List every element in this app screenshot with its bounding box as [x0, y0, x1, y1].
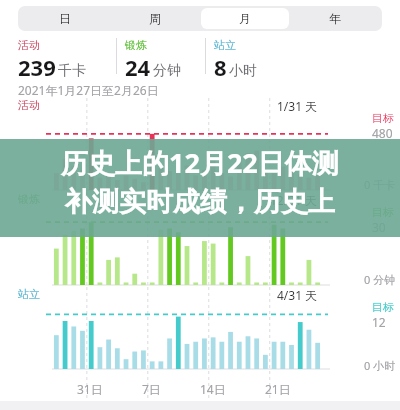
staticText: 活动	[18, 98, 40, 112]
staticText: 锻炼	[125, 38, 147, 52]
staticText: 锻炼	[18, 192, 40, 206]
staticText: 12/31 天	[270, 192, 318, 208]
button[interactable]: 周	[111, 8, 199, 29]
staticText: 千卡	[58, 62, 86, 80]
staticText: 0 小时	[364, 358, 396, 373]
staticText: 目标	[372, 205, 394, 219]
staticText: 21日	[265, 381, 291, 397]
staticText: 7日	[142, 381, 161, 397]
staticText: 年	[329, 11, 341, 26]
staticText: 目标	[372, 111, 394, 125]
staticText: 日	[59, 11, 71, 26]
staticText: 分钟	[153, 62, 181, 80]
staticText: 8	[214, 52, 227, 82]
staticText: 目标	[372, 300, 394, 314]
button[interactable]: 年	[291, 8, 379, 29]
staticText: 4/31 天	[277, 287, 318, 303]
staticText: 480	[372, 125, 393, 141]
staticText: 站立	[214, 38, 236, 52]
staticText: 24	[125, 52, 151, 82]
staticText: 站立	[18, 287, 40, 301]
staticText: 活动	[18, 38, 40, 52]
staticText: 周	[149, 11, 161, 26]
staticText: 31日	[77, 381, 103, 397]
staticText: 0 分钟	[364, 272, 396, 287]
staticText: 月	[239, 11, 251, 26]
staticText: 1/31 天	[277, 98, 318, 114]
button[interactable]: 日	[21, 8, 109, 29]
button[interactable]: 月	[201, 8, 289, 29]
staticText: 2021年1月27日至2月26日	[18, 82, 159, 98]
staticText: 补测实时成绩，历史上	[65, 185, 335, 219]
staticText: 历史上的12月22日体测	[61, 144, 339, 181]
staticText: 12	[372, 314, 386, 330]
staticText: 小时	[229, 62, 257, 80]
staticText: 30	[372, 219, 386, 235]
staticText: 14日	[200, 381, 226, 397]
staticText: 239	[18, 52, 56, 82]
